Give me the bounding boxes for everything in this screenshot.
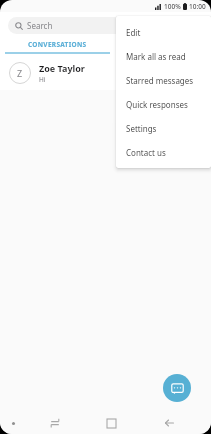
staticText: Contact us: [126, 147, 166, 158]
button[interactable]: CONVERSATIONS: [0, 38, 115, 56]
staticText: Search: [27, 20, 53, 31]
button[interactable]: Settings: [116, 116, 211, 140]
button[interactable]: Mark all as read: [116, 44, 211, 68]
button[interactable]: Recents: [83, 412, 140, 434]
button[interactable]: Edit: [116, 20, 211, 44]
button[interactable]: Z: [0, 56, 211, 90]
staticText: Mark all as read: [126, 51, 186, 62]
staticText: Zoe Taylor: [39, 62, 85, 74]
staticText: Edit: [126, 27, 141, 38]
button[interactable]: Contact us: [116, 140, 211, 164]
staticText: Quick responses: [126, 99, 188, 110]
staticText: Settings: [126, 123, 157, 134]
staticText: Hi: [39, 75, 46, 84]
staticText: CONVERSATIONS: [28, 40, 87, 49]
button[interactable]: Back: [140, 412, 197, 434]
staticText: 10:00: [189, 2, 206, 11]
button[interactable]: New conversation: [163, 374, 191, 402]
button[interactable]: Starred messages: [116, 68, 211, 92]
button[interactable]: Switch: [26, 412, 83, 434]
staticText: Z: [17, 67, 23, 79]
button[interactable]: Search: [8, 17, 203, 34]
staticText: 100%: [164, 2, 181, 11]
button[interactable]: Quick responses: [116, 92, 211, 116]
staticText: Starred messages: [126, 75, 194, 86]
button[interactable]: Menu dot: [0, 412, 26, 434]
